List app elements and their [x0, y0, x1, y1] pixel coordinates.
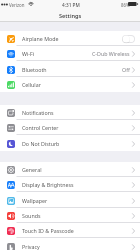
- staticText: Cellular: [22, 81, 41, 88]
- staticText: Wallpaper: [22, 197, 48, 204]
- staticText: Sounds: [22, 212, 41, 219]
- staticText: Settings: [59, 12, 82, 20]
- button[interactable]: Cellular: [0, 77, 140, 92]
- staticText: Bluetooth: [22, 66, 47, 73]
- button[interactable]: Touch ID & Passcode: [0, 223, 140, 238]
- staticText: Airplane Mode: [22, 35, 59, 42]
- button[interactable]: General: [0, 162, 140, 177]
- staticText: 4:31 PM: [62, 2, 80, 8]
- button[interactable]: Control Center: [0, 120, 140, 135]
- button[interactable]: Sounds: [0, 208, 140, 223]
- staticText: Do Not Disturb: [22, 140, 60, 147]
- button[interactable]: Bluetooth: [0, 62, 140, 77]
- staticText: Display & Brightness: [22, 181, 74, 188]
- button[interactable]: Display & Brightness: [0, 177, 140, 192]
- button[interactable]: Do Not Disturb: [0, 136, 140, 151]
- button[interactable]: Wallpaper: [0, 193, 140, 208]
- button[interactable]: Privacy: [0, 239, 140, 250]
- staticText: Notifications: [22, 109, 54, 116]
- staticText: Verizon: [9, 2, 25, 8]
- button[interactable]: Wi-Fi: [0, 46, 140, 61]
- button[interactable]: Airplane Mode: [0, 31, 140, 46]
- staticText: Touch ID & Passcode: [22, 227, 74, 234]
- staticText: Wi-Fi: [22, 50, 35, 57]
- button[interactable]: Notifications: [0, 105, 140, 120]
- staticText: Privacy: [22, 243, 40, 250]
- staticText: 86%: [121, 2, 130, 8]
- staticText: Control Center: [22, 124, 59, 131]
- staticText: Off: [122, 66, 130, 73]
- staticText: C-Dub Wireless: [92, 50, 130, 57]
- staticText: General: [22, 166, 42, 173]
